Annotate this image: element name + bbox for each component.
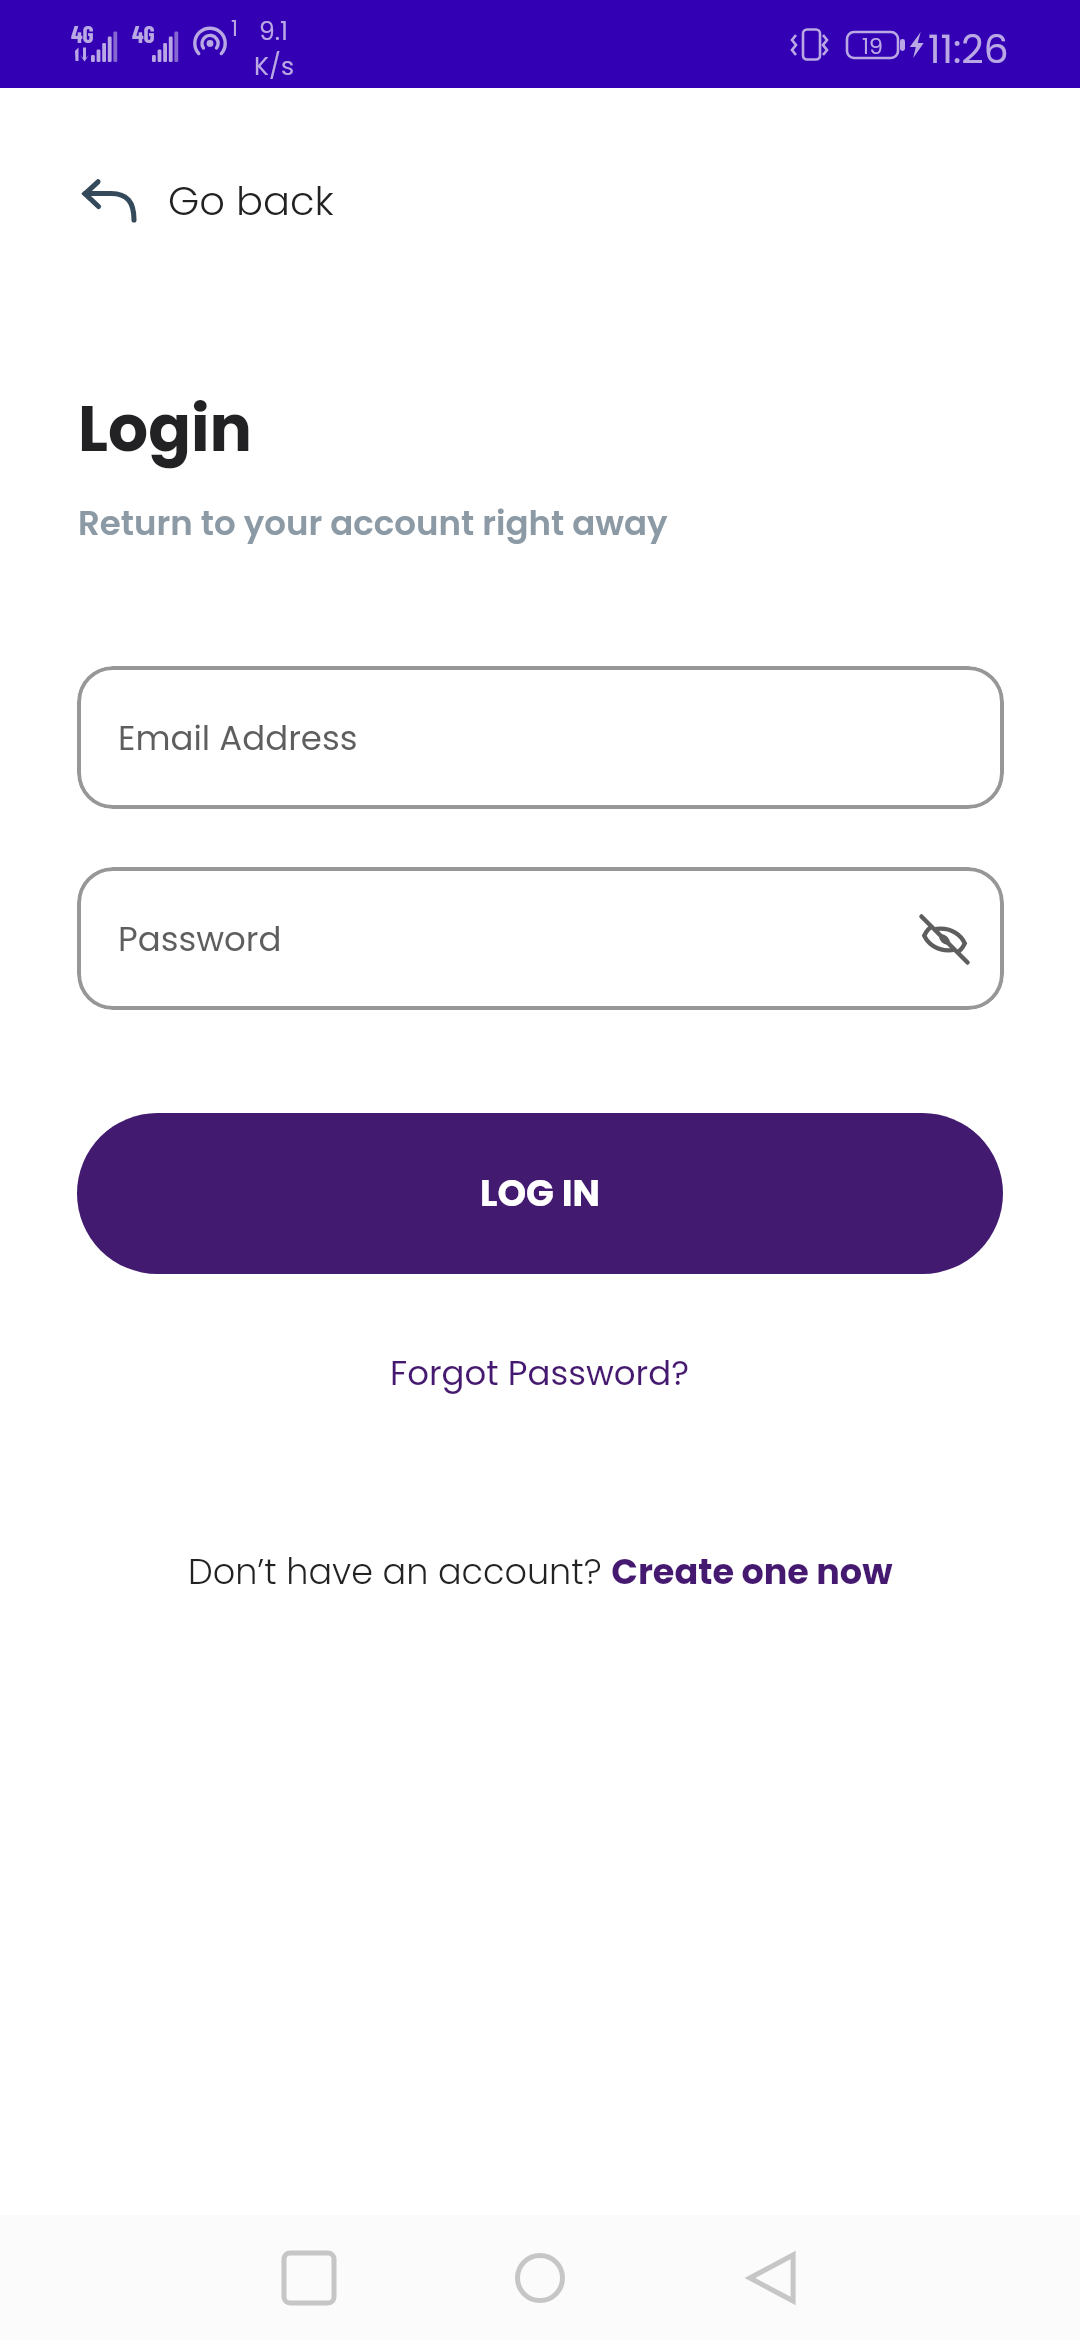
staticText: Login	[78, 385, 253, 473]
button[interactable]: Don’t have an account? Create one now	[174, 1537, 907, 1606]
staticText: 4G	[71, 19, 94, 48]
staticText: 11:26	[928, 22, 1009, 77]
button[interactable]: Password	[77, 867, 1004, 1010]
staticText: Password	[118, 915, 282, 963]
staticText: 4G	[132, 19, 155, 48]
staticText: 9.1	[259, 14, 289, 49]
staticText: Email Address	[118, 714, 358, 762]
button[interactable]: Back	[721, 2228, 821, 2328]
staticText: 1	[231, 13, 239, 44]
staticText: LOG IN	[480, 1168, 600, 1219]
staticText: Return to your account right away	[78, 499, 668, 547]
button[interactable]: LOG IN	[77, 1113, 1003, 1274]
staticText: Don’t have an account? Create one now	[188, 1547, 893, 1596]
staticText: K/s	[254, 49, 294, 84]
button[interactable]: Home	[490, 2228, 590, 2328]
button[interactable]: Show password	[902, 897, 986, 981]
staticText: 19	[862, 31, 883, 59]
button[interactable]: Recent apps	[259, 2228, 359, 2328]
button[interactable]: Go back	[64, 159, 362, 243]
staticText: Forgot Password?	[390, 1349, 690, 1397]
staticText: Go back	[168, 173, 334, 229]
button[interactable]: Email Address	[77, 666, 1004, 809]
button[interactable]: Forgot Password?	[376, 1339, 704, 1407]
